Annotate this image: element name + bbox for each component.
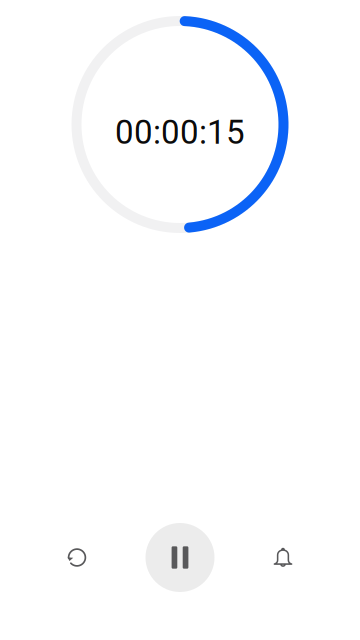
button[interactable]: Alarm [254,528,312,586]
button[interactable]: Pause [145,523,214,592]
button[interactable]: Restart [48,528,106,586]
staticText: 00:00:15 [115,113,245,152]
